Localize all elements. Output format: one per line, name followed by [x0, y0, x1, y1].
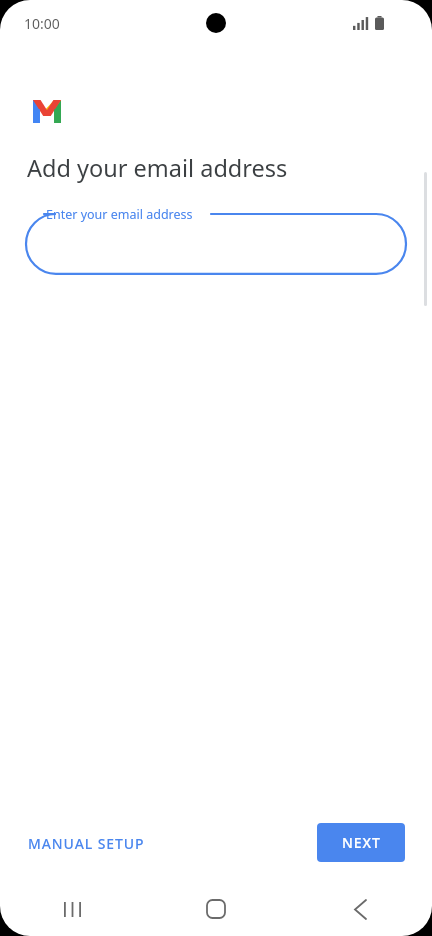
staticText: Add your email address [27, 152, 288, 184]
button[interactable]: NEXT [317, 823, 405, 862]
button[interactable]: Home [144, 882, 288, 936]
staticText: MANUAL SETUP [28, 834, 145, 853]
staticText: 10:00 [24, 14, 60, 33]
button[interactable]: Enter your email address [26, 206, 406, 276]
button[interactable]: Recents [0, 882, 144, 936]
button[interactable]: MANUAL SETUP [14, 824, 159, 863]
staticText: NEXT [342, 833, 381, 852]
button[interactable]: Back [288, 882, 432, 936]
staticText: Enter your email address [46, 206, 193, 223]
